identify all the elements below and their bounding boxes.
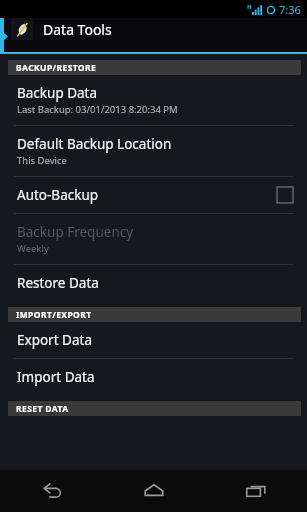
other: Auto-Backup toggle (277, 187, 293, 203)
staticText: H (247, 3, 252, 11)
button[interactable]: Export Data (0, 322, 307, 358)
button[interactable]: Auto-Backup (0, 177, 307, 213)
button[interactable]: Backup Data (0, 75, 307, 125)
staticText: Import Data (17, 368, 95, 386)
staticText: Backup Frequency (17, 223, 134, 241)
button[interactable]: Import Data (0, 359, 307, 395)
staticText: IMPORT/EXPORT (16, 309, 92, 321)
button[interactable]: Home (103, 470, 205, 512)
staticText: Default Backup Location (17, 135, 172, 153)
staticText: Last Backup: 03/01/2013 8:20:34 PM (17, 103, 178, 116)
staticText: Export Data (17, 331, 92, 349)
staticText: RESET DATA (16, 403, 69, 415)
button[interactable]: Back (0, 470, 103, 512)
button[interactable]: Restore Data (0, 265, 307, 301)
button[interactable]: Recent apps (205, 470, 307, 512)
staticText: BACKUP/RESTORE (16, 62, 97, 74)
staticText: Data Tools (43, 20, 112, 39)
button[interactable]: Default Backup Location (0, 126, 307, 176)
staticText: This Device (17, 154, 67, 167)
staticText: Auto-Backup (17, 186, 99, 204)
staticText: Restore Data (17, 274, 99, 292)
button[interactable]: Backup Frequency (0, 214, 307, 264)
staticText: Backup Data (17, 84, 98, 102)
staticText: Weekly (17, 242, 49, 255)
staticText: 7:36 (279, 2, 301, 17)
